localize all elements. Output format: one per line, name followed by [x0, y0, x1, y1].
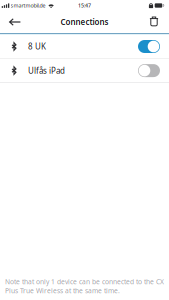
staticText: Note that only 1 device can be connected… [5, 277, 164, 295]
staticText: 8 UK [28, 41, 46, 52]
button[interactable]: Back [2, 11, 28, 33]
button[interactable]: 8 UK [0, 35, 169, 58]
button[interactable]: Delete [141, 11, 167, 33]
staticText: Connections [60, 17, 108, 27]
button[interactable]: Ulfås iPad [0, 59, 169, 82]
staticText: smartmobil.de [11, 2, 46, 9]
staticText: 15:47 [78, 2, 91, 9]
staticText: Ulfås iPad [28, 65, 65, 76]
